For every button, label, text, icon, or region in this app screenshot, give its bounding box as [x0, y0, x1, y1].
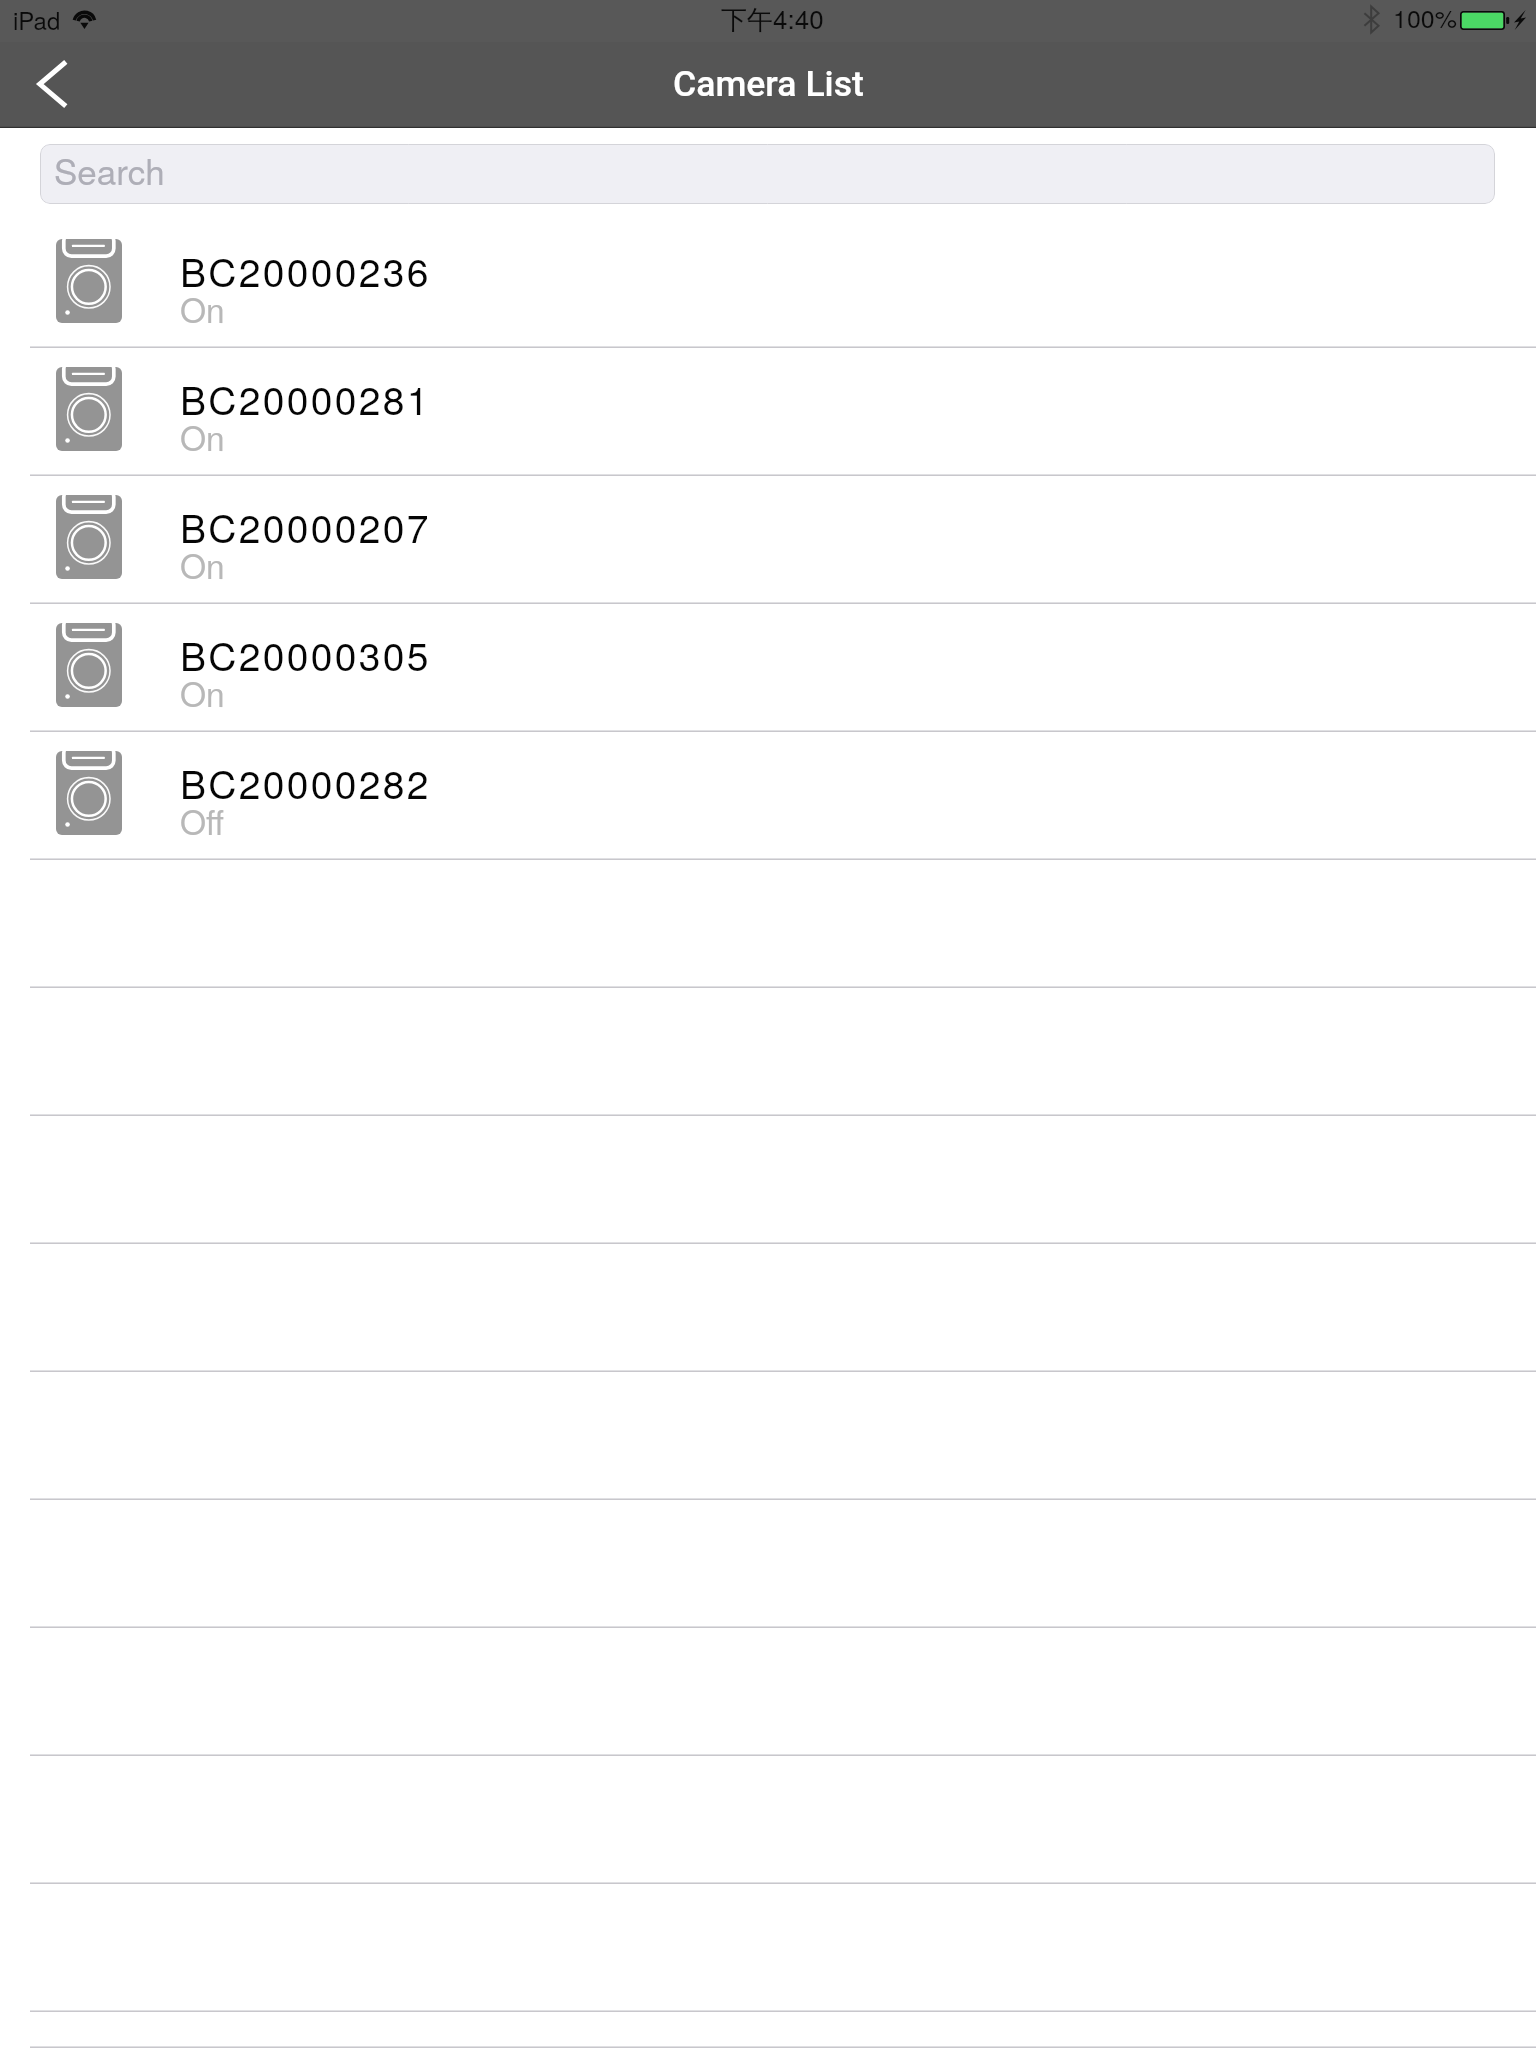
staticText: 100%	[1393, 0, 1457, 35]
button[interactable]: BC20000207	[0, 476, 1536, 604]
staticText: On	[180, 541, 225, 589]
staticText: BC20000282	[180, 754, 431, 810]
button[interactable]: BC20000282	[0, 732, 1536, 860]
button[interactable]: BC20000236	[0, 220, 1536, 348]
staticText: On	[180, 669, 225, 717]
staticText: Search	[54, 145, 165, 195]
staticText: On	[180, 285, 225, 333]
button[interactable]: Back	[0, 42, 92, 128]
button[interactable]: BC20000281	[0, 348, 1536, 476]
button[interactable]: Search	[40, 144, 1495, 204]
staticText: 下午4:40	[721, 0, 824, 37]
button[interactable]: BC20000305	[0, 604, 1536, 732]
staticText: BC20000236	[180, 242, 431, 298]
staticText: iPad	[13, 2, 61, 36]
staticText: On	[180, 413, 225, 461]
staticText: BC20000207	[180, 498, 431, 554]
staticText: Off	[180, 797, 224, 845]
staticText: Camera List	[673, 63, 864, 105]
staticText: BC20000305	[180, 626, 431, 682]
staticText: BC20000281	[180, 370, 431, 426]
